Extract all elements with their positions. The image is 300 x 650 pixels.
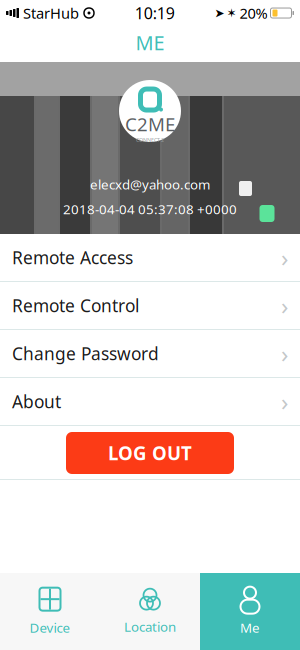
staticText: ✶ [226, 6, 236, 20]
staticText: ➤ [214, 6, 224, 20]
button[interactable]: Change Password [0, 330, 300, 378]
button[interactable]: Device [0, 573, 100, 650]
staticText: Remote Access [12, 246, 133, 269]
staticText: › [281, 242, 288, 273]
staticText: LOG OUT [108, 441, 192, 465]
staticText: CONNECT 2 [136, 136, 164, 143]
button[interactable]: Remote Access [0, 234, 300, 282]
staticText: › [281, 290, 288, 321]
button[interactable]: LOG OUT [66, 432, 234, 474]
button[interactable]: About [0, 378, 300, 426]
button[interactable]: Location [100, 573, 200, 650]
staticText: 2018-04-04 05:37:08 +0000 [63, 200, 237, 218]
staticText: About [12, 390, 61, 413]
staticText: 20% [239, 3, 267, 23]
staticText: › [281, 338, 288, 369]
staticText: elecxd@yahoo.com [90, 176, 210, 193]
button[interactable]: Me [200, 573, 300, 650]
staticText: C2ME [125, 112, 175, 136]
staticText: Me [240, 619, 260, 636]
button[interactable]: Remote Control [0, 282, 300, 330]
staticText: › [281, 386, 288, 417]
staticText: ME [135, 29, 164, 56]
staticText: Change Password [12, 342, 159, 365]
staticText: Location [124, 618, 176, 635]
staticText: Device [29, 619, 70, 636]
staticText: 10:19 [135, 2, 175, 24]
staticText: Remote Control [12, 294, 139, 317]
staticText: StarHub [23, 3, 79, 23]
